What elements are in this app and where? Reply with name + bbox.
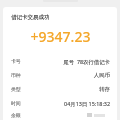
staticText: 人民币 [27,72,110,79]
staticText: +9347.23 [11,27,110,46]
button[interactable]: 卡号 [11,54,110,68]
staticText: 币种 [11,72,23,78]
staticText: 转存 [27,86,110,93]
staticText: 借记卡交易成功 [11,14,110,21]
staticText: 04月13日 15:18:32 [27,100,110,107]
staticText: 卡号 [11,58,23,64]
staticText: 余额 [11,112,23,118]
button[interactable]: 余额 [11,110,110,120]
staticText: 卡号 [11,58,23,64]
staticText: 尾号 78农行借记卡 [27,58,110,65]
button[interactable]: 币种 [11,68,110,82]
button[interactable]: 时间 [11,96,110,110]
staticText: 04月13日 15:18:32 [27,100,110,107]
staticText: 余额 [11,112,23,118]
staticText: 尾号 78农行借记卡 [27,58,110,65]
staticText: 人民币 [27,72,110,79]
staticText: 类型 [11,86,23,92]
button[interactable]: 类型 [11,82,110,96]
staticText: 类型 [11,86,23,92]
staticText: 借记卡交易成功 [11,14,110,21]
staticText: 币种 [11,72,23,78]
staticText: 时间 [11,100,23,106]
staticText: 转存 [27,86,110,93]
staticText: 时间 [11,100,23,106]
